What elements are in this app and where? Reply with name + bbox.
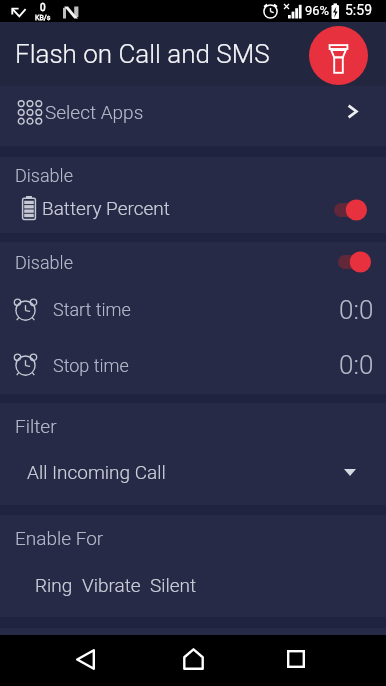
button[interactable]: Stop time [0,337,386,393]
button[interactable]: All Incoming Call [0,449,386,495]
button[interactable]: Back [61,635,109,683]
button[interactable]: Silent [150,574,197,596]
button[interactable]: Ring [35,574,73,596]
staticText: Stop time [53,355,129,376]
button[interactable]: Home [169,635,217,683]
staticText: 0:0 [339,350,374,380]
staticText: 0 [40,2,46,14]
staticText: 0:0 [339,295,374,325]
button[interactable]: Select Apps [0,84,386,139]
button[interactable]: Start time [0,282,386,337]
staticText: Enable For [15,527,104,549]
staticText: Select Apps [45,101,144,123]
staticText: Battery Percent [42,197,170,219]
staticText: KB/s [35,14,51,22]
staticText: Disable [15,165,73,186]
button[interactable]: Toggle flashlight [309,26,368,85]
staticText: Start time [53,299,131,320]
staticText: Flash on Call and SMS [15,39,270,69]
button[interactable]: Battery Percent [0,188,386,228]
button[interactable]: Recent apps [272,635,320,683]
staticText: Disable [15,252,73,273]
staticText: All Incoming Call [27,461,166,483]
button[interactable]: Vibrate [82,574,141,596]
staticText: 5:59 [345,2,372,18]
staticText: Filter [15,415,57,437]
button[interactable]: Disable [0,242,386,282]
staticText: 96% [305,3,330,18]
